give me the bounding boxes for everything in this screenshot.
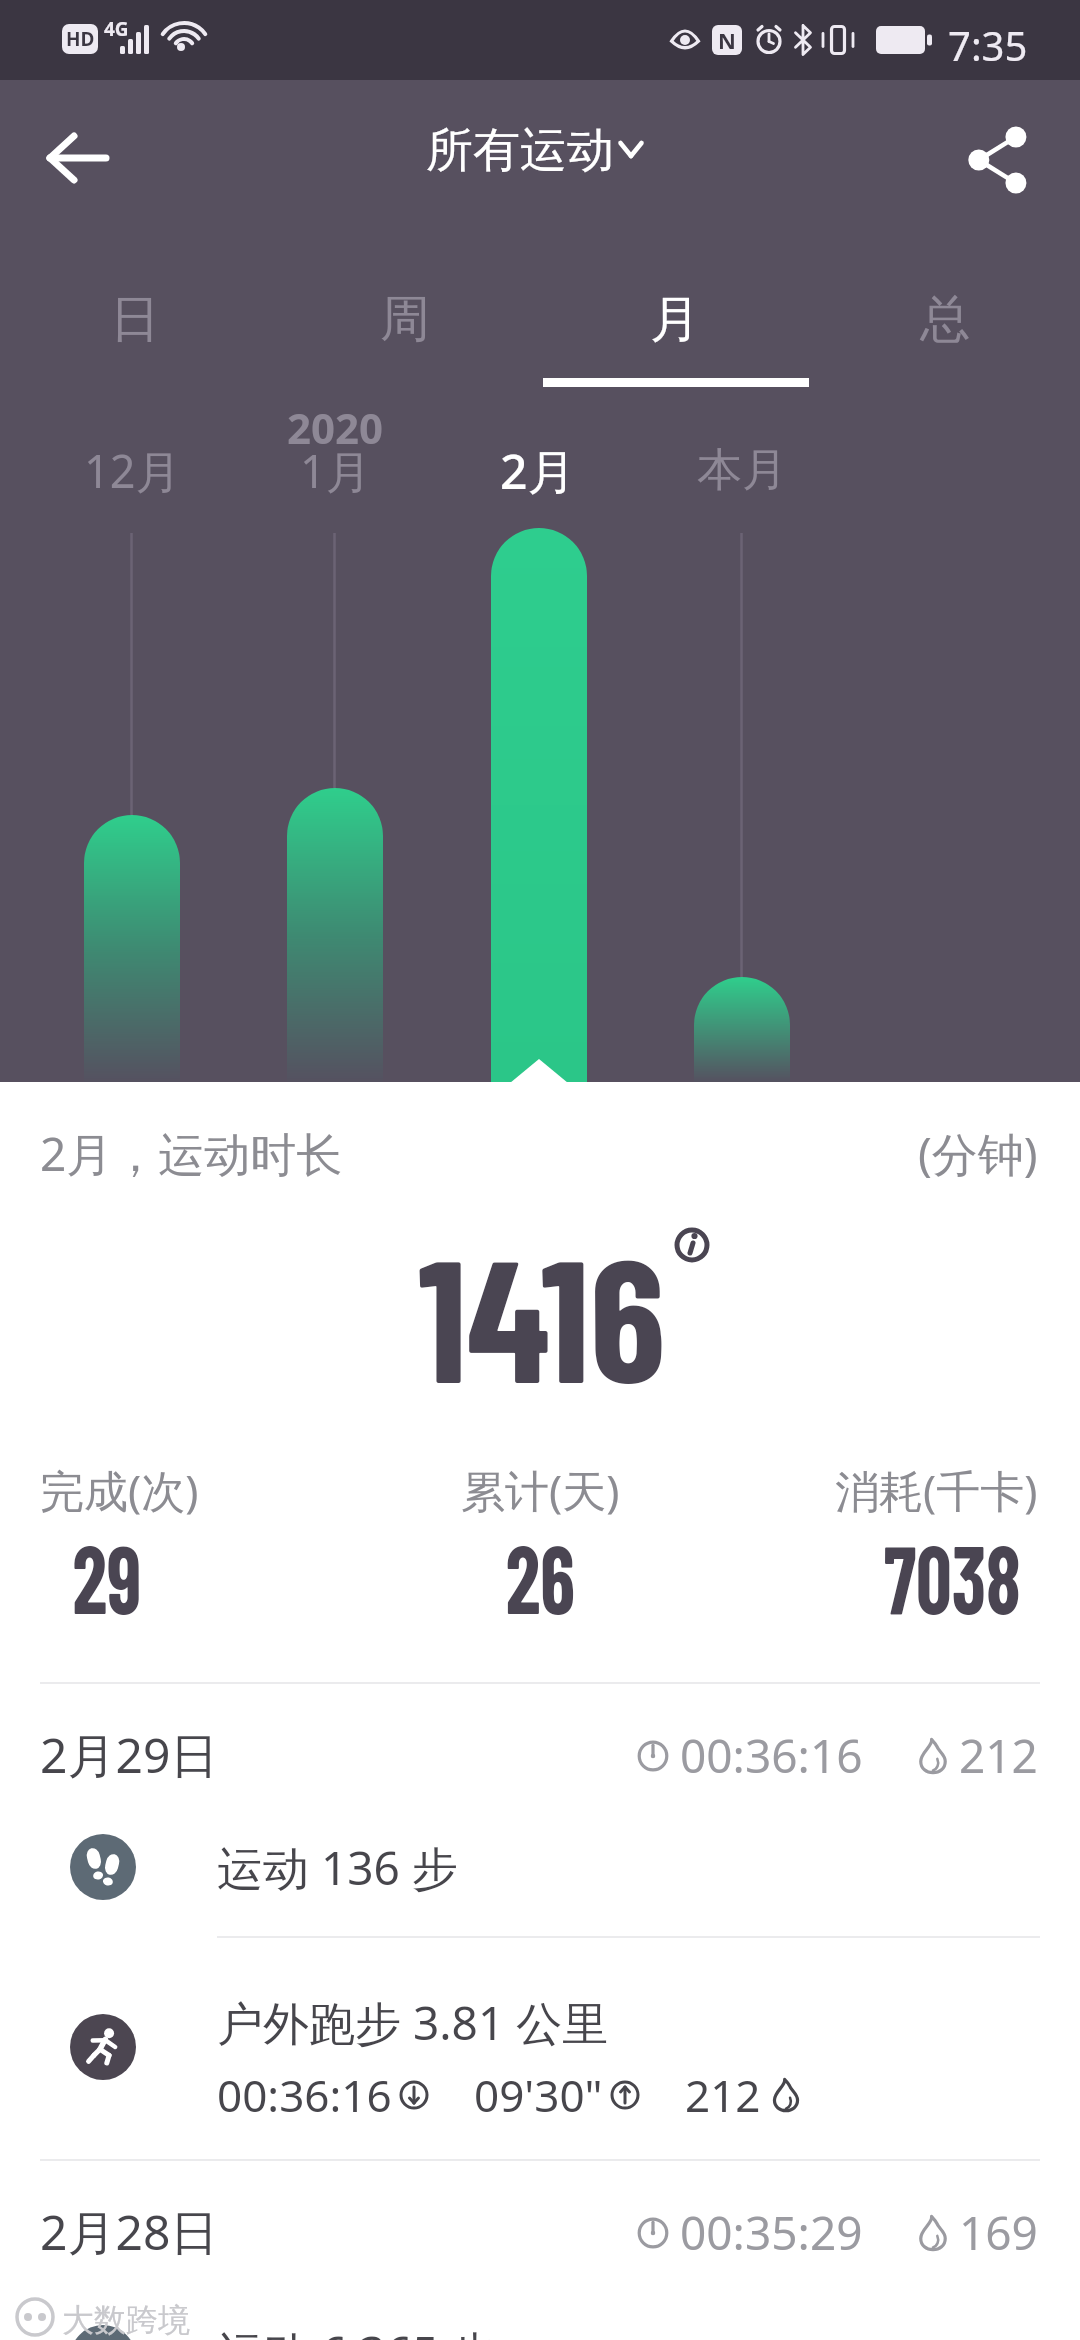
staticText: 1416 xyxy=(418,1211,666,1417)
staticText: 00:35:29 xyxy=(680,2201,863,2264)
staticText: 日 xyxy=(110,288,160,351)
button[interactable]: 周 xyxy=(270,256,540,382)
staticText: N xyxy=(718,25,736,55)
staticText: 212 xyxy=(685,2065,761,2125)
button[interactable]: 2月28日 xyxy=(0,2189,1080,2275)
staticText: 12月 xyxy=(84,440,181,501)
staticText: 2月，运动时长 xyxy=(40,1122,343,1185)
staticText: 7:35 xyxy=(948,18,1028,72)
staticText: 本月 xyxy=(697,442,787,499)
button[interactable]: 运动 136 步 xyxy=(0,1820,1080,1914)
staticText: 7038 xyxy=(884,1518,1021,1628)
button[interactable] xyxy=(950,112,1046,208)
button[interactable]: 日 xyxy=(0,256,270,382)
button[interactable] xyxy=(30,110,126,206)
button[interactable] xyxy=(380,104,700,200)
staticText: 消耗(千卡) xyxy=(835,1460,1038,1520)
staticText: 大数跨境 xyxy=(62,2300,190,2340)
staticText: 26 xyxy=(506,1518,575,1628)
staticText: 户外跑步 3.81 公里 xyxy=(217,1991,609,2054)
staticText: 总 xyxy=(920,288,970,351)
staticText: 169 xyxy=(959,2201,1038,2264)
staticText: 4G xyxy=(104,16,129,42)
staticText: 2月 xyxy=(500,438,576,502)
staticText: 00:36:16 xyxy=(217,2065,392,2125)
staticText: 1月 xyxy=(300,440,371,501)
staticText: 周 xyxy=(380,288,430,351)
button[interactable]: 户外跑步 3.81 公里 xyxy=(0,1980,1080,2120)
staticText: 212 xyxy=(959,1724,1038,1787)
button[interactable]: 总 xyxy=(810,256,1080,382)
button[interactable]: 月 xyxy=(540,256,810,382)
staticText: 00:36:16 xyxy=(680,1724,863,1787)
staticText: 2月28日 xyxy=(40,2199,219,2265)
staticText: 2020 xyxy=(287,399,384,456)
staticText: 完成(次) xyxy=(40,1460,199,1520)
staticText: 09'30" xyxy=(474,2065,603,2125)
staticText: 2月29日 xyxy=(40,1722,219,1788)
button[interactable]: 2月29日 xyxy=(0,1712,1080,1798)
staticText: HD xyxy=(66,26,95,52)
staticText: (分钟) xyxy=(918,1122,1038,1185)
staticText: 运动 136 步 xyxy=(217,1836,458,1899)
staticText: 月 xyxy=(650,288,700,351)
staticText: 29 xyxy=(73,1518,141,1628)
staticText: 运动 6,365 步 xyxy=(217,2321,497,2340)
staticText: 所有运动 xyxy=(426,121,614,180)
staticText: 累计(天) xyxy=(461,1460,620,1520)
